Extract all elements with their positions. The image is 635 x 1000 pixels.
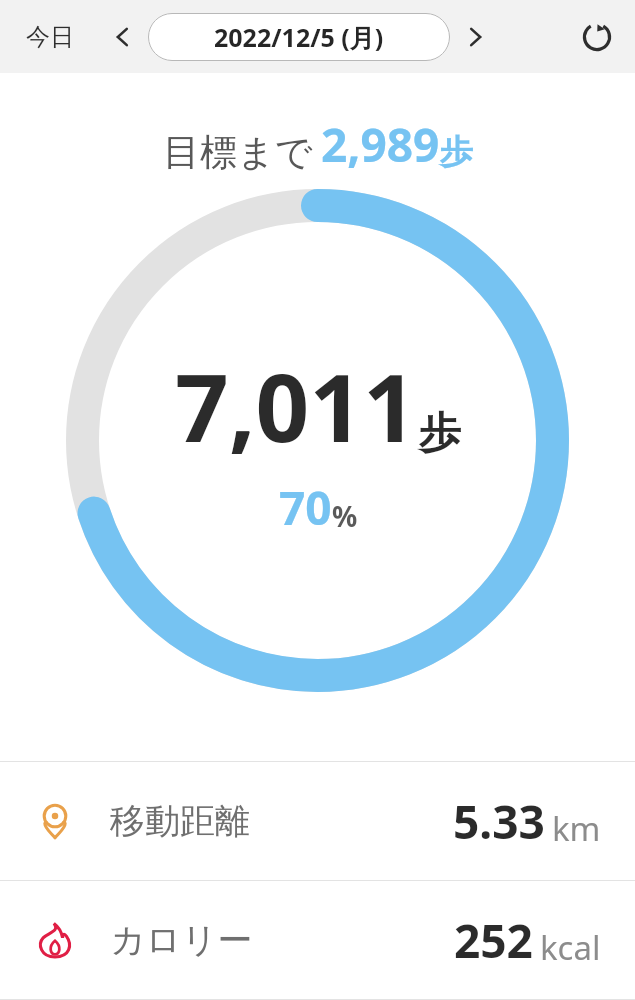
staticText: カロリー xyxy=(110,918,253,962)
staticText: 歩 xyxy=(419,407,461,460)
staticText: % xyxy=(332,497,358,535)
button[interactable]: Refresh xyxy=(573,13,621,61)
staticText: kcal xyxy=(540,925,601,970)
button[interactable]: Previous day xyxy=(100,15,144,59)
button[interactable]: 今日 xyxy=(14,14,86,60)
button[interactable]: 2022/12/5 (月) xyxy=(148,13,450,61)
button[interactable]: Calories xyxy=(0,881,635,999)
button[interactable]: Distance xyxy=(0,762,635,880)
staticText: 2022/12/5 (月) xyxy=(214,20,384,54)
staticText: 70 xyxy=(279,476,332,539)
staticText: 今日 xyxy=(26,22,74,52)
other: Distance xyxy=(34,800,76,842)
staticText: 7,011 xyxy=(175,342,417,470)
other: Calories xyxy=(34,919,76,961)
staticText: km xyxy=(552,806,601,851)
button[interactable]: Next day xyxy=(454,15,498,59)
staticText: 2,989 xyxy=(321,113,440,176)
staticText: 5.33 xyxy=(453,790,545,853)
staticText: 目標まで xyxy=(163,129,313,176)
staticText: 移動距離 xyxy=(110,799,250,843)
staticText: 歩 xyxy=(440,131,473,173)
staticText: 252 xyxy=(454,909,533,972)
